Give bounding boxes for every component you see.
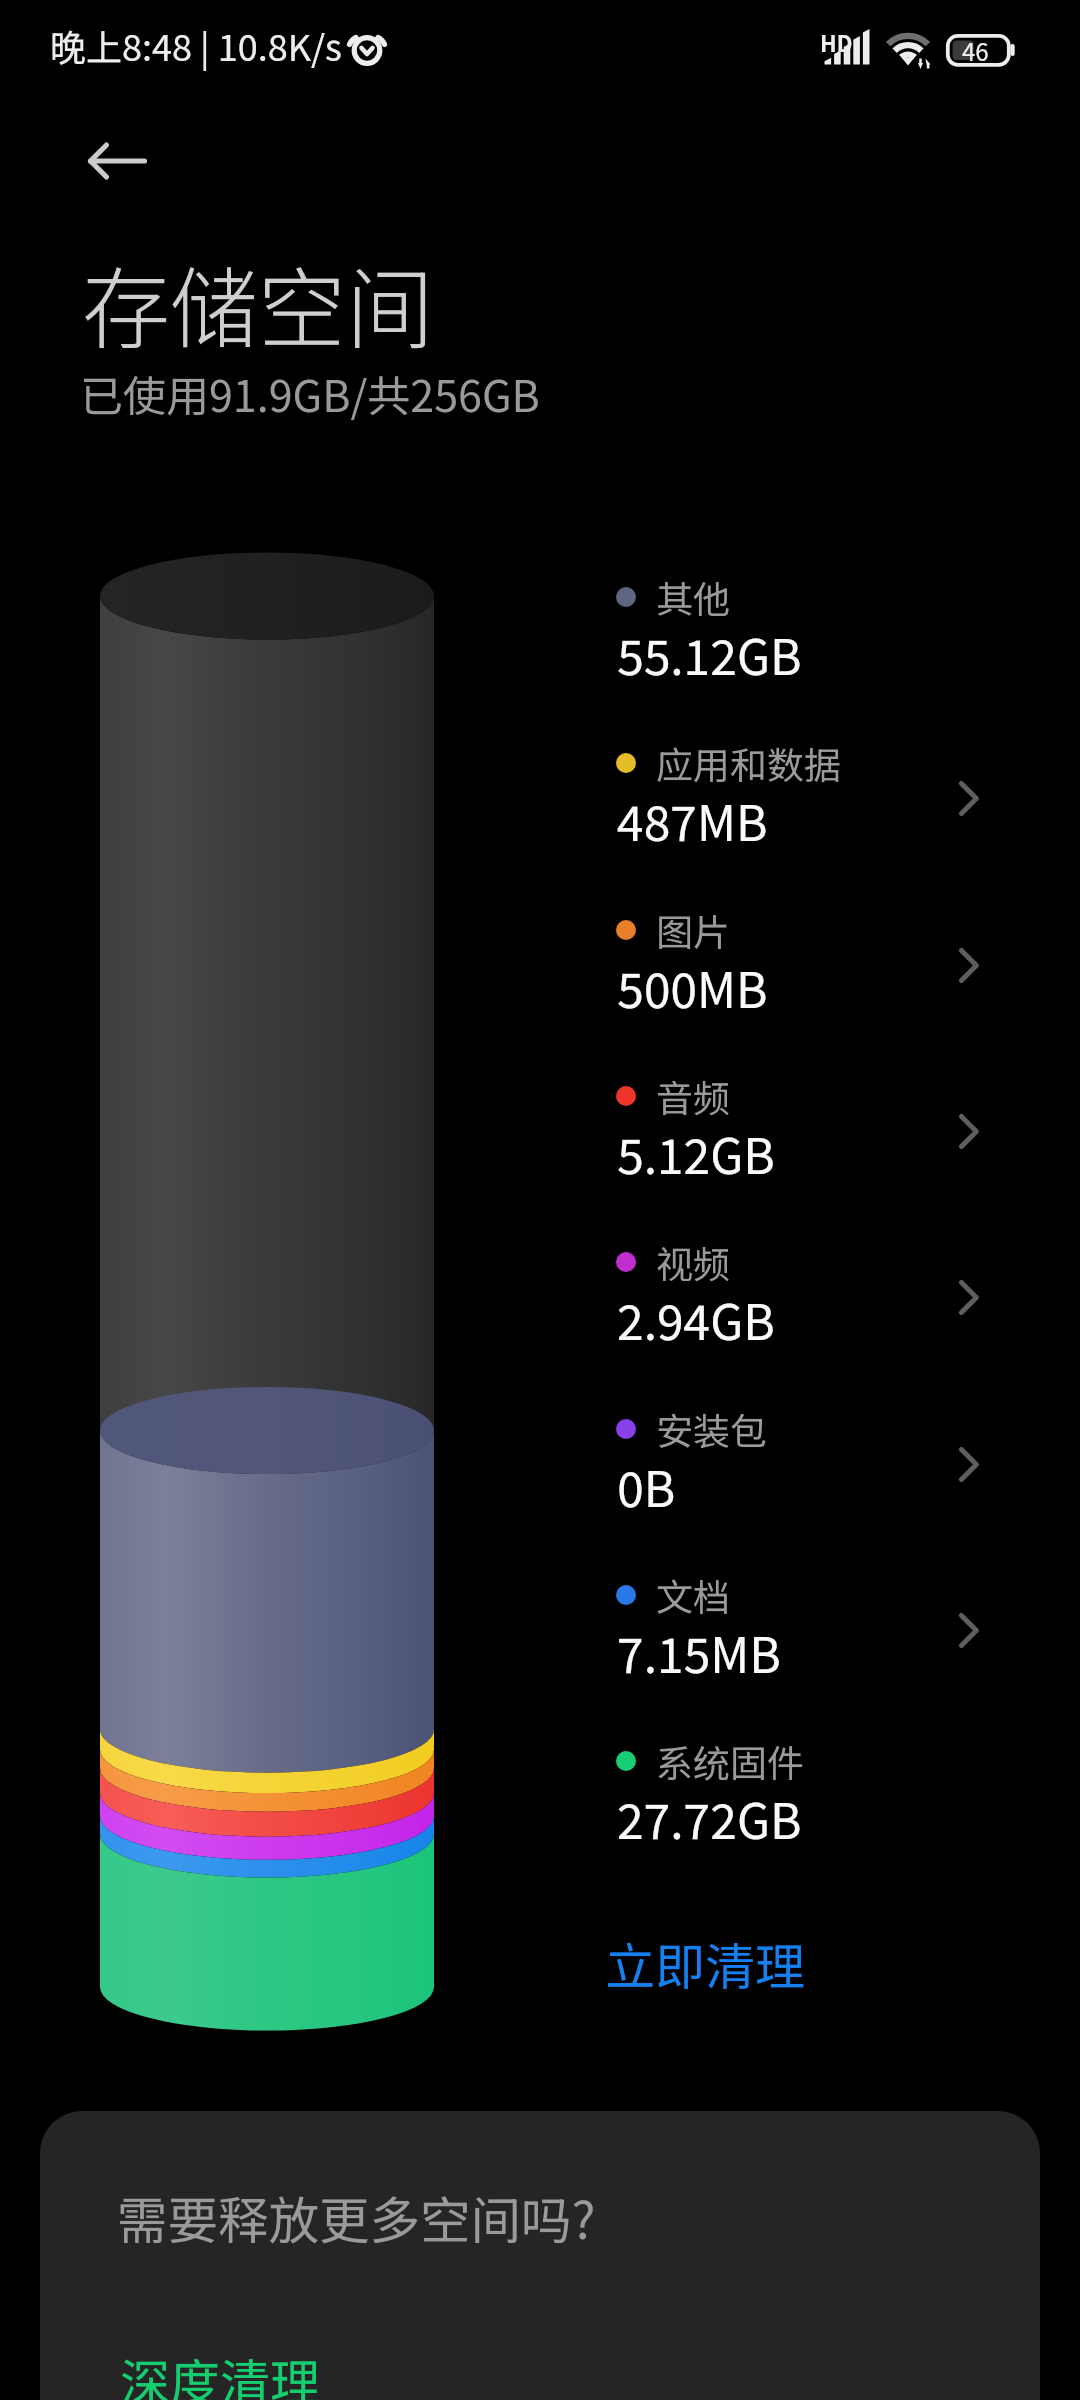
staticText: 500MB — [617, 952, 768, 1022]
staticText: 深度清理 — [120, 2343, 320, 2400]
staticText: 0B — [617, 1451, 676, 1521]
button[interactable]: Back — [55, 121, 175, 207]
button[interactable]: 应用和数据 — [600, 717, 1020, 869]
button[interactable]: 系统固件 — [600, 1715, 1020, 1867]
staticText: HD — [820, 26, 853, 58]
staticText: 已使用91.9GB/共256GB — [80, 362, 540, 424]
staticText: 5.12GB — [617, 1118, 775, 1188]
button[interactable]: 图片 — [600, 884, 1020, 1036]
staticText: 安装包 — [656, 1402, 767, 1456]
button[interactable]: 立即清理 — [590, 1918, 822, 2010]
button[interactable]: 需要释放更多空间吗? — [40, 2111, 1040, 2400]
staticText: 晚上8:48 | 10.8K/s — [50, 19, 342, 71]
staticText: 系统固件 — [656, 1734, 804, 1788]
button[interactable]: 视频 — [600, 1216, 1020, 1368]
staticText: 立即清理 — [605, 1927, 805, 1999]
staticText: 应用和数据 — [656, 736, 841, 790]
staticText: 图片 — [656, 903, 730, 957]
button[interactable]: 音频 — [600, 1050, 1020, 1202]
button[interactable]: 其他 — [600, 551, 1020, 703]
staticText: 7.15MB — [617, 1617, 781, 1687]
staticText: 文档 — [656, 1568, 730, 1622]
staticText: 音频 — [656, 1069, 730, 1123]
staticText: 46 — [962, 33, 989, 68]
button[interactable]: 安装包 — [600, 1383, 1020, 1535]
staticText: 需要释放更多空间吗? — [117, 2180, 596, 2253]
button[interactable]: 文档 — [600, 1549, 1020, 1701]
staticText: 存储空间 — [82, 239, 435, 366]
staticText: 27.72GB — [617, 1783, 802, 1853]
staticText: 其他 — [656, 570, 730, 624]
staticText: 487MB — [617, 785, 768, 855]
staticText: 55.12GB — [617, 619, 802, 689]
staticText: 2.94GB — [617, 1284, 775, 1354]
staticText: 视频 — [656, 1235, 730, 1289]
